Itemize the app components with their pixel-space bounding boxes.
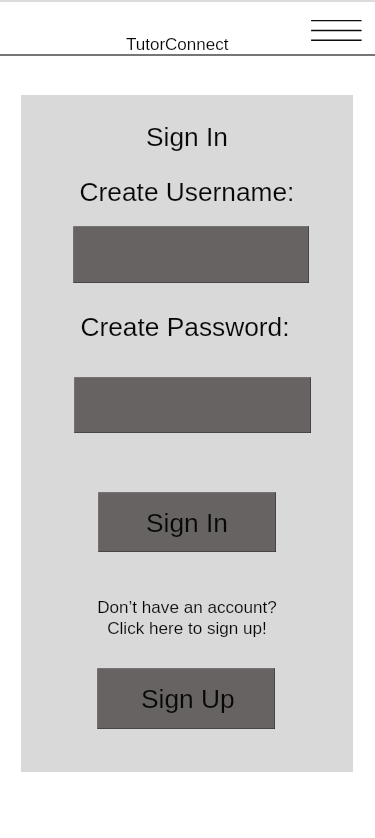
staticText: Sign In	[21, 122, 353, 151]
button[interactable]: Sign In	[98, 492, 276, 552]
button[interactable]: Password input field	[74, 377, 311, 433]
button[interactable]: Don’t have an account? Click here to sig…	[21, 598, 353, 638]
staticText: Create Password:	[19, 312, 351, 341]
button[interactable]: Open navigation menu	[307, 12, 369, 48]
button[interactable]: Sign Up	[97, 668, 275, 729]
staticText: Create Username:	[21, 177, 353, 206]
staticText: Sign In	[146, 508, 228, 537]
staticText: Sign Up	[141, 684, 235, 713]
button[interactable]: Username input field	[73, 226, 309, 283]
staticText: TutorConnect	[126, 35, 229, 54]
